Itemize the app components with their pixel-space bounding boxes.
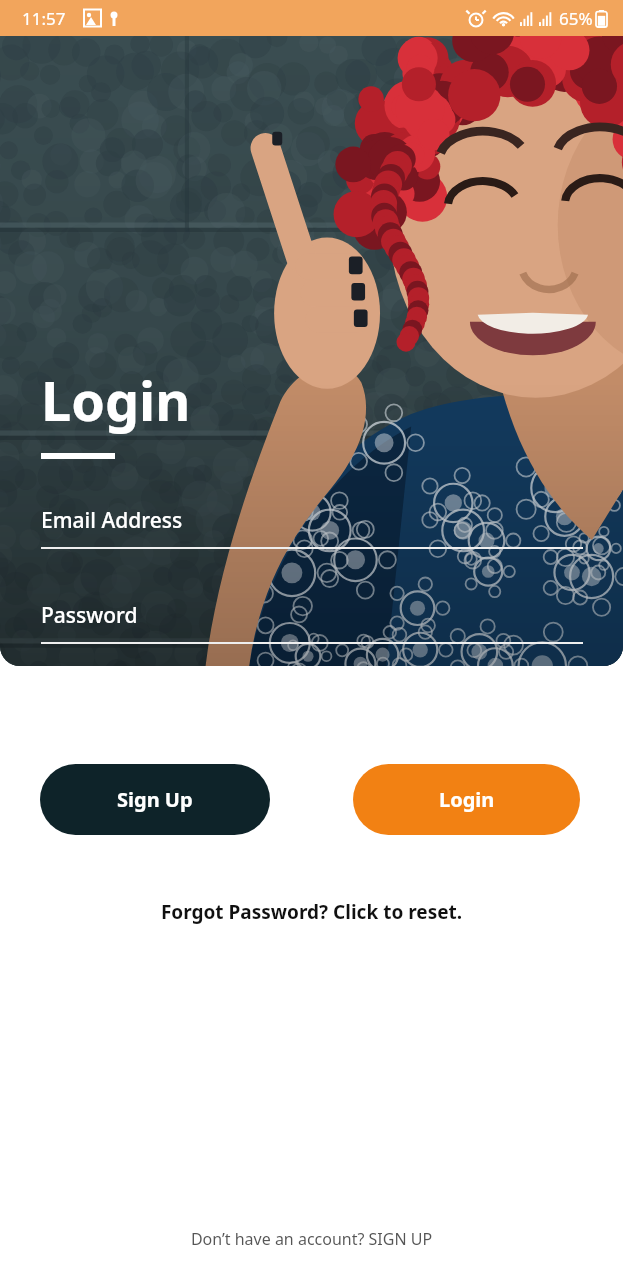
staticText: Password bbox=[41, 601, 138, 630]
staticText: Sign Up bbox=[117, 786, 193, 813]
staticText: Login bbox=[439, 786, 495, 813]
button[interactable]: Sign Up bbox=[40, 764, 270, 835]
button[interactable]: Don’t have an account? SIGN UP bbox=[0, 1222, 623, 1256]
button[interactable]: Login bbox=[353, 764, 580, 835]
button[interactable]: Email Address bbox=[41, 506, 583, 549]
staticText: Email Address bbox=[41, 506, 183, 535]
button[interactable]: Password bbox=[41, 601, 583, 644]
button[interactable]: Forgot Password? Click to reset. bbox=[0, 893, 623, 931]
staticText: 65% bbox=[559, 7, 593, 30]
staticText: Login bbox=[41, 363, 191, 437]
staticText: 11:57 bbox=[22, 7, 66, 30]
